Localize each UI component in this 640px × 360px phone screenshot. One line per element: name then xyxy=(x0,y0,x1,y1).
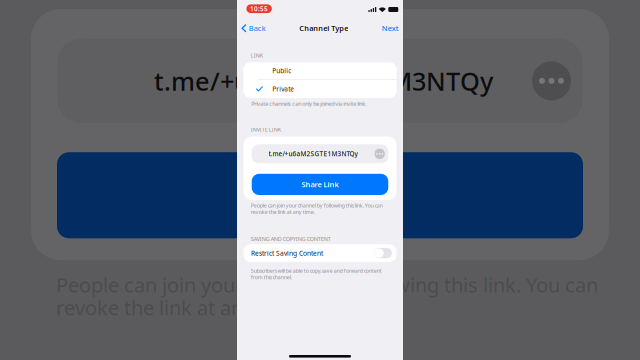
button[interactable]: Restrict Saving Content xyxy=(243,244,396,262)
button[interactable]: Next xyxy=(382,20,403,36)
staticText: Private xyxy=(272,84,294,93)
staticText: INVITE LINK xyxy=(251,126,281,133)
button[interactable]: Public xyxy=(243,62,396,79)
button[interactable]: Share Link xyxy=(252,174,388,195)
staticText: revoke the link at any time. xyxy=(56,294,305,321)
staticText: revoke the link at any time. xyxy=(251,208,315,216)
staticText: t.me/+u6aM2SGTE1M3NTQy xyxy=(269,149,358,158)
staticText: SAVING AND COPYING CONTENT xyxy=(251,235,331,243)
staticText: Next xyxy=(382,23,399,33)
staticText: Private channels can only be joined via … xyxy=(251,100,367,107)
staticText: t.me/+u6aM2SGTE1M3NTQy xyxy=(154,64,493,98)
staticText: Public xyxy=(272,66,291,75)
staticText: Channel Type xyxy=(299,23,348,33)
staticText: Subscribers will be able to copy, save a… xyxy=(251,267,382,274)
staticText: Back xyxy=(249,23,266,33)
staticText: People can join your channel by followin… xyxy=(251,202,383,209)
staticText: People can join your channel by followin… xyxy=(56,271,598,298)
button[interactable]: Private xyxy=(243,80,396,98)
staticText: Share Link xyxy=(301,179,338,189)
staticText: from this channel. xyxy=(251,274,292,281)
staticText: LINK xyxy=(251,52,263,59)
staticText: Restrict Saving Content xyxy=(251,248,323,258)
staticText: 10:55 xyxy=(250,4,268,13)
button[interactable]: Back xyxy=(237,20,266,36)
button[interactable]: More options xyxy=(374,149,385,159)
